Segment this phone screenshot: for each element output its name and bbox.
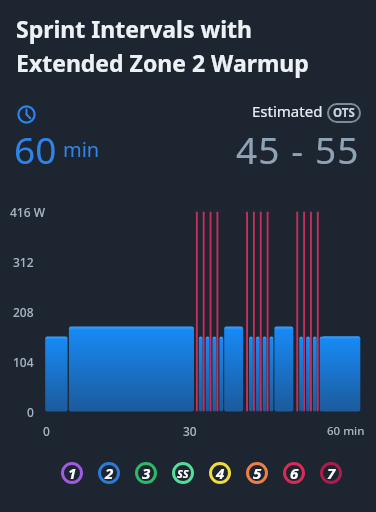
staticText: min [63, 136, 100, 163]
staticText: Extended Zone 2 Warmup [16, 47, 309, 78]
staticText: 30 [183, 423, 197, 439]
staticText: 45 - 55 [236, 124, 360, 174]
staticText: 416 W [10, 204, 46, 220]
staticText: OTS [333, 105, 355, 121]
button[interactable]: 3 [135, 462, 157, 484]
staticText: 0 [43, 423, 50, 439]
staticText: 2 [105, 463, 114, 483]
staticText: 3 [142, 463, 151, 483]
staticText: 104 [13, 354, 34, 370]
staticText: 60 min [327, 423, 365, 439]
button[interactable]: 1 [61, 462, 83, 484]
button[interactable]: OTS [327, 103, 361, 123]
button[interactable]: 60 [14, 124, 100, 174]
button[interactable]: 6 [283, 462, 305, 484]
button[interactable]: 5 [246, 462, 268, 484]
staticText: 1 [68, 463, 77, 483]
staticText: 7 [327, 463, 336, 483]
staticText: 312 [13, 254, 34, 270]
button[interactable]: SS [172, 462, 194, 484]
staticText: 4 [216, 463, 225, 483]
staticText: Sprint Intervals with [16, 13, 252, 44]
staticText: 5 [253, 463, 262, 483]
button[interactable]: 4 [209, 462, 231, 484]
staticText: 6 [290, 463, 299, 483]
button[interactable]: 2 [98, 462, 120, 484]
staticText: 60 [14, 124, 57, 174]
staticText: 208 [13, 304, 34, 320]
staticText: 0 [27, 404, 34, 420]
button[interactable]: 7 [320, 462, 342, 484]
staticText: Estimated [252, 101, 323, 121]
staticText: SS [177, 466, 189, 481]
